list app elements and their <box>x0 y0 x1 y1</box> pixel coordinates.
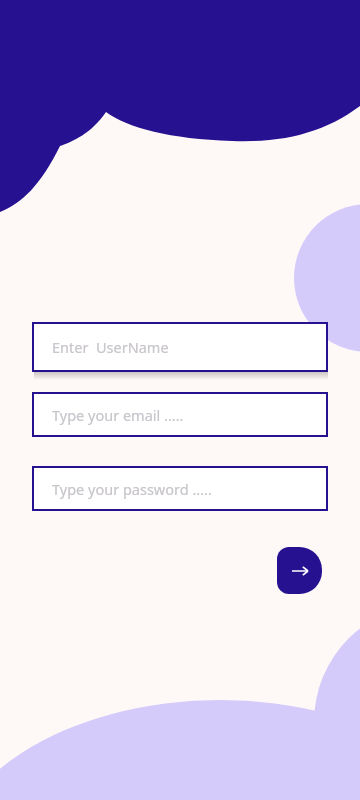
staticText: Type your email ..... <box>52 405 184 425</box>
staticText: Enter UserName <box>52 337 169 357</box>
staticText: Type your password ..... <box>52 479 212 499</box>
button[interactable]: Next <box>277 547 322 594</box>
button[interactable]: Type your password ..... <box>32 466 328 511</box>
button[interactable]: Type your email ..... <box>32 392 328 437</box>
button[interactable]: Enter UserName <box>32 322 328 372</box>
